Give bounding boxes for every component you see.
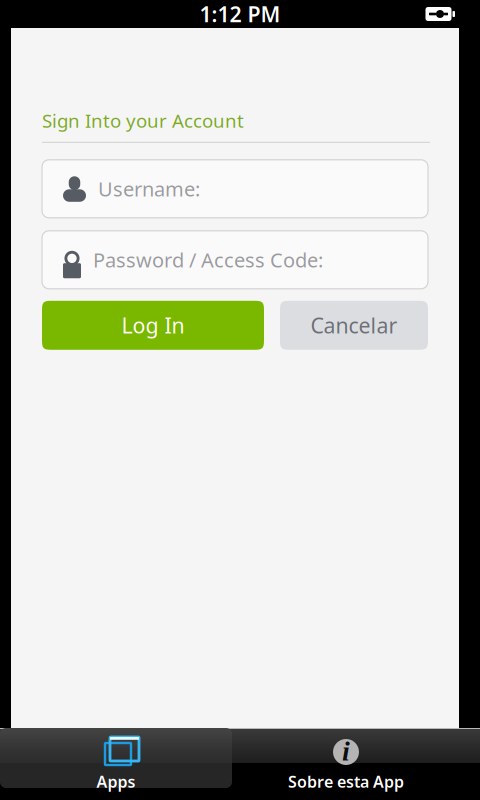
- staticText: Password / Access Code:: [93, 246, 323, 273]
- button[interactable]: Password / Access Code:: [42, 231, 428, 289]
- staticText: Log In: [121, 311, 184, 339]
- button[interactable]: Username:: [42, 160, 428, 218]
- staticText: Cancelar: [310, 311, 397, 339]
- staticText: 1:12 PM: [199, 0, 280, 28]
- button[interactable]: Log In: [42, 301, 264, 350]
- staticText: Sobre esta App: [288, 771, 404, 792]
- button[interactable]: Cancelar: [280, 301, 428, 350]
- button[interactable]: i: [232, 728, 480, 800]
- staticText: Username:: [98, 175, 200, 202]
- staticText: i: [342, 735, 350, 766]
- staticText: Apps: [96, 771, 135, 792]
- button[interactable]: Apps: [0, 728, 232, 800]
- staticText: Sign Into your Account: [42, 108, 244, 133]
